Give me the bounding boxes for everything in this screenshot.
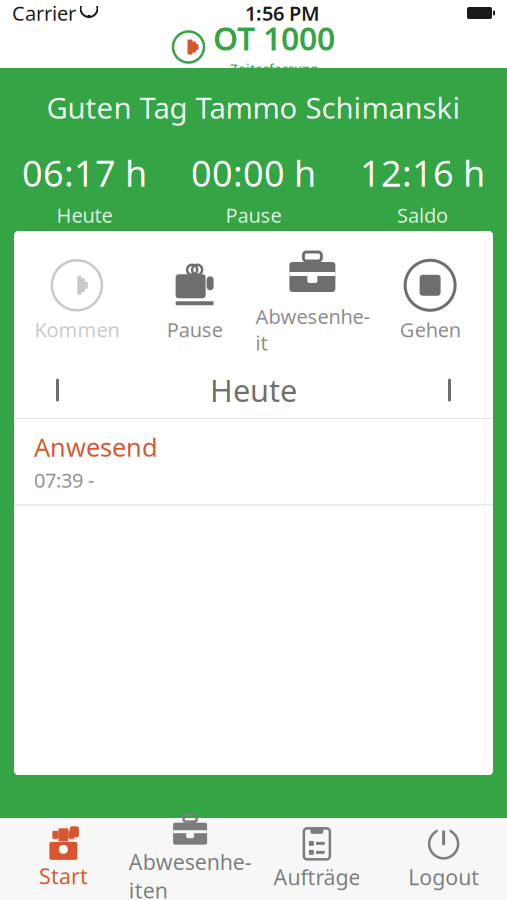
button[interactable]: Abwesenheiten — [127, 808, 254, 900]
staticText: Pause — [167, 316, 223, 343]
staticText: Abwesenheiten — [129, 848, 252, 900]
staticText: Aufträge — [273, 863, 360, 891]
button[interactable]: Aufträge — [253, 821, 380, 897]
button[interactable]: Abwesenheit — [253, 239, 371, 362]
staticText: Abwesenheit — [255, 303, 369, 356]
staticText: OT 1000 — [213, 17, 335, 59]
button[interactable]: Anwesend — [14, 419, 493, 504]
staticText — [75, 0, 81, 28]
button[interactable]: Start — [0, 822, 127, 896]
button[interactable]: Kommen — [18, 252, 136, 349]
staticText: Heute — [56, 202, 112, 228]
staticText: Anwesend — [34, 430, 158, 464]
staticText: 1:56 PM — [245, 0, 320, 26]
staticText: 12:16 h — [360, 149, 485, 197]
button[interactable]: Nächster Tag — [403, 367, 493, 413]
staticText: Guten Tag Tammo Schimanski — [46, 88, 460, 127]
staticText: Gehen — [400, 316, 461, 343]
button[interactable]: Logout — [380, 821, 507, 897]
staticText: Start — [39, 862, 88, 890]
staticText: 00:00 h — [191, 149, 316, 197]
staticText: 07:39 - — [34, 467, 94, 493]
button[interactable]: Gehen — [371, 252, 489, 349]
staticText: Pause — [225, 202, 281, 228]
staticText: Zeiterfassung — [230, 59, 318, 77]
staticText: Heute — [210, 370, 297, 410]
button[interactable]: Pause — [136, 252, 254, 349]
staticText: Carrier — [12, 0, 76, 26]
staticText: 06:17 h — [22, 149, 147, 197]
staticText: Saldo — [397, 202, 448, 228]
button[interactable]: Vorheriger Tag — [14, 367, 104, 413]
staticText: Kommen — [34, 316, 119, 343]
staticText: Logout — [408, 863, 479, 891]
